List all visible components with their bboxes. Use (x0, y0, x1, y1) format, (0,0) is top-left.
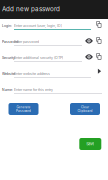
staticText: Password (16, 109, 31, 113)
button[interactable]: Show password (85, 38, 93, 43)
staticText: Enter account (user, login, ID) (14, 24, 62, 28)
button[interactable]: Show security code (85, 54, 93, 59)
staticText: Enter website address (14, 72, 50, 76)
staticText: Website: (2, 72, 16, 76)
button[interactable]: Copy login (97, 21, 101, 27)
staticText: Enter password (14, 40, 39, 44)
staticText: Enter additional security (OTP) (14, 56, 63, 60)
staticText: Clear (81, 105, 89, 109)
staticText: Clipboard (77, 109, 92, 113)
staticText: Password: (2, 40, 19, 44)
button[interactable]: Copy security code (97, 53, 101, 59)
staticText: Name: (2, 88, 13, 92)
staticText: Login: (2, 24, 12, 28)
button[interactable]: Clear (70, 103, 100, 115)
button[interactable]: Open website (98, 69, 101, 74)
staticText: Save (86, 142, 94, 146)
staticText: Enter name for this entry (14, 88, 53, 92)
button[interactable]: Generate (8, 103, 38, 115)
staticText: Security: (2, 56, 16, 60)
button[interactable]: Save (79, 138, 101, 150)
button[interactable]: Copy password (97, 37, 101, 43)
staticText: Add new password (2, 5, 60, 13)
staticText: Generate (16, 105, 30, 109)
